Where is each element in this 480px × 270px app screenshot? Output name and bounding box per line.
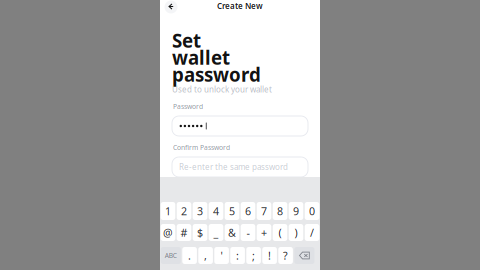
staticText: : bbox=[236, 248, 239, 263]
button[interactable]: 3 bbox=[193, 202, 207, 220]
staticText: & bbox=[228, 225, 236, 240]
staticText: 6 bbox=[245, 204, 251, 218]
staticText: $ bbox=[197, 225, 203, 240]
button[interactable]: & bbox=[225, 224, 239, 241]
staticText: ) bbox=[294, 225, 297, 240]
staticText: ABC bbox=[165, 251, 177, 260]
staticText: Set bbox=[172, 28, 201, 53]
staticText: 9 bbox=[293, 204, 299, 218]
staticText: Used to unlock your wallet bbox=[172, 84, 272, 95]
staticText: 5 bbox=[229, 204, 235, 218]
staticText: ? bbox=[283, 248, 288, 263]
staticText: , bbox=[204, 248, 207, 263]
button[interactable]: @ bbox=[161, 224, 175, 241]
button[interactable]: 9 bbox=[289, 202, 303, 220]
button[interactable]: 2 bbox=[177, 202, 191, 220]
staticText: - bbox=[246, 225, 249, 240]
button[interactable]: 8 bbox=[273, 202, 287, 220]
staticText: 8 bbox=[277, 204, 283, 218]
staticText: # bbox=[180, 225, 187, 240]
button[interactable]: ! bbox=[262, 247, 277, 264]
button[interactable]: ' bbox=[214, 247, 229, 264]
button[interactable]: 0 bbox=[305, 202, 319, 220]
staticText: wallet bbox=[172, 45, 230, 70]
button[interactable]: - bbox=[241, 224, 255, 241]
button[interactable]: : bbox=[230, 247, 245, 264]
staticText: 3 bbox=[197, 204, 203, 218]
staticText: ' bbox=[221, 248, 223, 263]
button[interactable]: / bbox=[305, 224, 319, 241]
staticText: + bbox=[261, 225, 267, 240]
button[interactable]: ) bbox=[289, 224, 303, 241]
button[interactable]: ? bbox=[278, 247, 293, 264]
staticText: Password bbox=[173, 102, 203, 111]
staticText: ; bbox=[252, 248, 255, 263]
button[interactable]: Back bbox=[164, 0, 178, 14]
button[interactable]: , bbox=[198, 247, 213, 264]
staticText: / bbox=[310, 225, 314, 240]
staticText: ( bbox=[278, 225, 281, 240]
button[interactable]: 6 bbox=[241, 202, 255, 220]
button[interactable]: + bbox=[257, 224, 271, 241]
staticText: 7 bbox=[261, 204, 267, 218]
button[interactable]: 1 bbox=[161, 202, 175, 220]
button[interactable]: ( bbox=[273, 224, 287, 241]
staticText: _ bbox=[213, 225, 218, 240]
staticText: Create New bbox=[217, 1, 263, 11]
button[interactable]: Delete bbox=[294, 247, 314, 264]
staticText: ! bbox=[268, 248, 271, 263]
button[interactable]: 7 bbox=[257, 202, 271, 220]
staticText: password bbox=[172, 62, 261, 87]
button[interactable]: $ bbox=[193, 224, 207, 241]
button[interactable]: 4 bbox=[209, 202, 223, 220]
staticText: Confirm Password bbox=[173, 143, 230, 152]
button[interactable]: _ bbox=[209, 224, 223, 241]
staticText: 0 bbox=[309, 204, 315, 218]
staticText: . bbox=[188, 248, 191, 263]
staticText: 1 bbox=[165, 204, 171, 218]
button[interactable]: # bbox=[177, 224, 191, 241]
staticText: 2 bbox=[181, 204, 187, 218]
button[interactable]: ; bbox=[246, 247, 261, 264]
staticText: Re-enter the same password bbox=[179, 162, 288, 172]
staticText: @ bbox=[163, 225, 173, 240]
staticText: 4 bbox=[213, 204, 219, 218]
button[interactable]: 5 bbox=[225, 202, 239, 220]
button[interactable]: . bbox=[182, 247, 197, 264]
button[interactable]: ABC bbox=[161, 247, 181, 264]
